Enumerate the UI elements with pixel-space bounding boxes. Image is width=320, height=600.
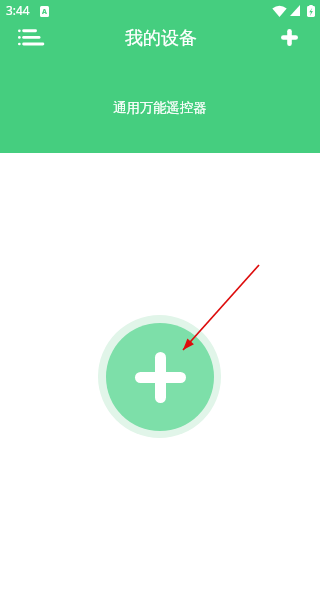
staticText: 我的设备 <box>125 27 197 50</box>
button[interactable]: Add device <box>98 315 221 438</box>
staticText: 3:44 <box>6 2 30 18</box>
button[interactable]: Add <box>269 17 309 57</box>
button[interactable]: 通用万能遥控器 <box>90 91 230 123</box>
staticText: A <box>42 7 47 17</box>
staticText: 通用万能遥控器 <box>113 99 207 116</box>
button[interactable]: Menu <box>9 15 53 59</box>
